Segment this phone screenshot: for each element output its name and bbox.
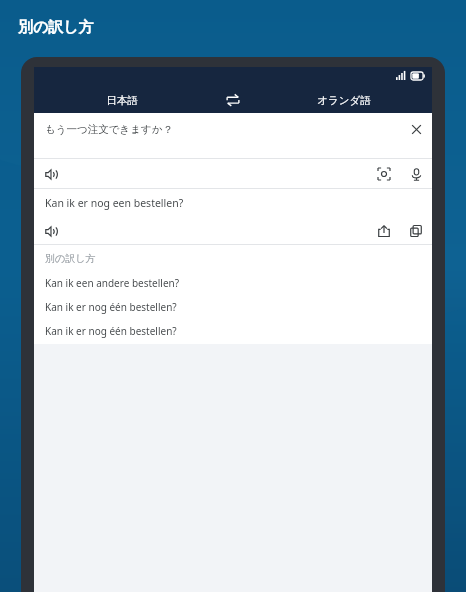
staticText: 別の訳し方 [45,252,96,265]
staticText: Kan ik er nog één bestellen? [45,300,177,314]
staticText: もう一つ注文できますか？ [45,123,173,136]
button[interactable]: Clear [405,118,427,140]
staticText: Kan ik er nog een bestellen? [45,196,184,210]
button[interactable]: Camera input [373,163,395,185]
button[interactable]: Voice input [405,163,427,185]
button[interactable]: Copy [405,220,427,242]
button[interactable]: Listen to translation [40,220,62,242]
button[interactable]: Kan ik er nog één bestellen? [34,319,432,343]
button[interactable]: Kan ik een andere bestellen? [34,271,432,295]
staticText: Kan ik er nog één bestellen? [45,324,177,338]
staticText: 日本語 [106,94,138,107]
button[interactable]: Swap languages [210,87,256,113]
button[interactable]: Listen to source text [40,163,62,185]
staticText: 別の訳し方 [18,18,94,37]
staticText: Kan ik een andere bestellen? [45,276,180,290]
button[interactable]: Kan ik er nog één bestellen? [34,295,432,319]
button[interactable]: Share [373,220,395,242]
button[interactable]: オランダ語 [256,87,432,113]
staticText: オランダ語 [317,94,371,107]
button[interactable]: 日本語 [34,87,210,113]
